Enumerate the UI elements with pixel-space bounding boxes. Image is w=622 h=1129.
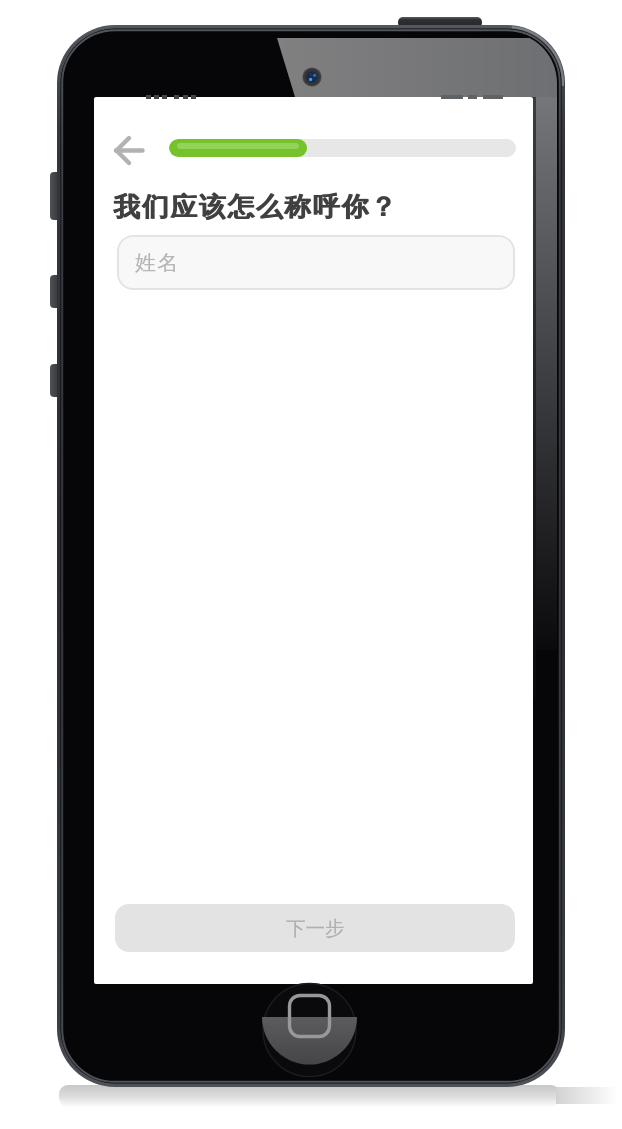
button[interactable]: 下一步: [115, 904, 515, 952]
staticText: 姓名: [135, 250, 180, 276]
staticText: 我们应该怎么称呼你？: [113, 190, 398, 223]
button[interactable]: 姓名: [117, 235, 515, 290]
staticText: 我们应该怎么称呼你？: [112, 190, 397, 223]
staticText: 下一步: [286, 916, 345, 941]
button[interactable]: [104, 131, 152, 171]
